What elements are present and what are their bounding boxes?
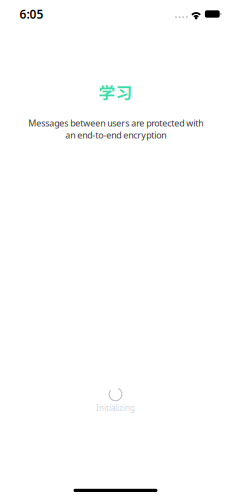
staticText: 6:05 [20, 6, 44, 22]
staticText: Initializing [96, 402, 135, 413]
staticText: Messages between users are protected wit… [28, 117, 203, 141]
staticText: 学习 [98, 80, 132, 104]
